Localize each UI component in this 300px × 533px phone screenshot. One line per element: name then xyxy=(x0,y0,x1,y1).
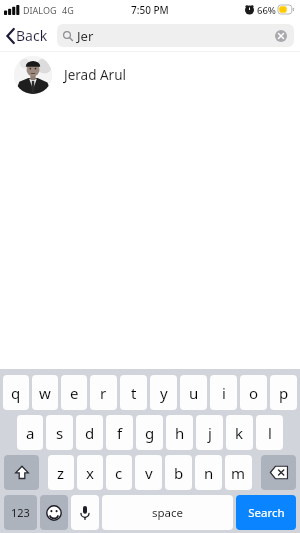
staticText: Jerad Arul xyxy=(64,66,127,84)
button[interactable]: p xyxy=(270,375,297,410)
staticText: u xyxy=(189,383,199,403)
button[interactable]: f xyxy=(106,415,133,450)
staticText: DIALOG xyxy=(23,4,57,16)
staticText: 66% xyxy=(257,4,276,17)
staticText: h xyxy=(175,423,185,443)
button[interactable]: Dictation xyxy=(71,495,99,530)
button[interactable]: v xyxy=(135,455,162,490)
staticText: r xyxy=(100,383,107,403)
button[interactable]: a xyxy=(17,415,43,450)
button[interactable]: w xyxy=(32,375,58,410)
staticText: c xyxy=(115,463,123,483)
button[interactable]: Emoji xyxy=(40,495,68,530)
staticText: y xyxy=(160,383,168,403)
button[interactable]: z xyxy=(48,455,74,490)
staticText: space xyxy=(152,505,184,521)
button[interactable]: r xyxy=(90,375,117,410)
button[interactable]: y xyxy=(150,375,177,410)
staticText: a xyxy=(26,423,35,443)
button[interactable]: Shift xyxy=(4,455,39,490)
button[interactable]: Back xyxy=(5,23,50,48)
staticText: k xyxy=(235,423,244,443)
staticText: x xyxy=(86,463,94,483)
staticText: s xyxy=(56,423,64,443)
button[interactable]: g xyxy=(136,415,163,450)
staticText: z xyxy=(57,463,65,483)
button[interactable]: space xyxy=(102,495,233,530)
button[interactable]: b xyxy=(165,455,192,490)
staticText: w xyxy=(39,383,51,403)
button[interactable]: n xyxy=(195,455,222,490)
staticText: v xyxy=(145,463,153,483)
button[interactable]: j xyxy=(196,415,223,450)
staticText: o xyxy=(249,383,259,403)
button[interactable]: Jerad Arul xyxy=(0,52,300,98)
staticText: b xyxy=(174,463,184,483)
staticText: q xyxy=(11,383,21,403)
button[interactable]: k xyxy=(226,415,253,450)
staticText: 4G xyxy=(62,4,74,16)
button[interactable]: o xyxy=(240,375,267,410)
staticText: 7:50 PM xyxy=(131,3,169,17)
button[interactable]: Delete xyxy=(261,455,296,490)
button[interactable]: 123 xyxy=(4,495,37,530)
button[interactable]: q xyxy=(3,375,29,410)
staticText: p xyxy=(279,383,289,403)
button[interactable]: t xyxy=(120,375,147,410)
staticText: m xyxy=(231,463,246,483)
button[interactable]: i xyxy=(210,375,237,410)
staticText: Back xyxy=(16,26,48,45)
staticText: d xyxy=(85,423,95,443)
button[interactable]: m xyxy=(225,455,252,490)
button[interactable]: Search xyxy=(236,495,296,530)
button[interactable]: u xyxy=(180,375,207,410)
staticText: Jer xyxy=(77,27,94,45)
staticText: e xyxy=(70,383,79,403)
button[interactable]: x xyxy=(77,455,103,490)
staticText: l xyxy=(268,423,272,443)
staticText: g xyxy=(145,423,155,443)
button[interactable]: e xyxy=(61,375,87,410)
staticText: n xyxy=(204,463,214,483)
button[interactable]: d xyxy=(76,415,103,450)
staticText: j xyxy=(208,423,212,443)
staticText: 123 xyxy=(11,505,30,520)
button[interactable]: h xyxy=(166,415,193,450)
staticText: f xyxy=(117,423,123,443)
staticText: Search xyxy=(248,505,285,521)
staticText: i xyxy=(222,383,226,403)
button[interactable]: c xyxy=(106,455,132,490)
button[interactable]: Clear search xyxy=(272,27,290,45)
button[interactable]: s xyxy=(46,415,73,450)
button[interactable]: l xyxy=(256,415,283,450)
button[interactable]: Jer xyxy=(57,24,294,47)
staticText: t xyxy=(131,383,137,403)
